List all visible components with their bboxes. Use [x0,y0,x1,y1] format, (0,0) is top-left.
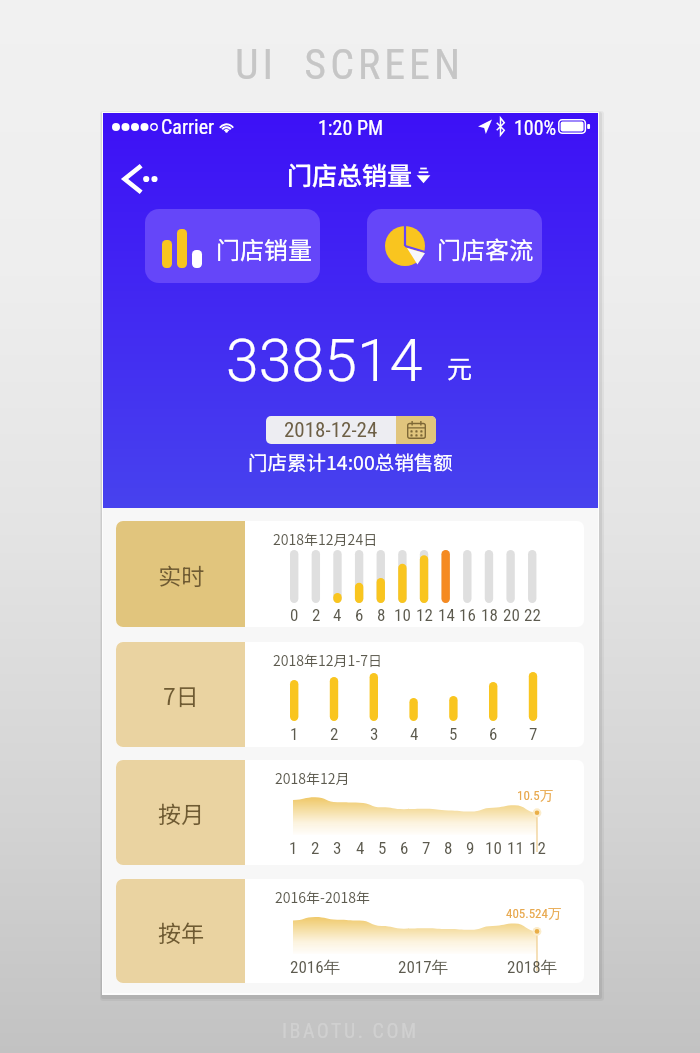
staticText: 100% [514,116,557,139]
staticText: 2018年12月1-7日 [273,650,383,670]
staticText: 8 [444,838,453,858]
staticText: 2016年-2018年 [275,887,371,907]
staticText: 1 [290,724,299,744]
button[interactable]: 按月 [116,760,584,865]
staticText: 2018年12月24日 [273,529,378,549]
button[interactable]: 7日 [116,642,584,747]
button[interactable]: 门店总销量 [287,156,431,192]
staticText: 4 [410,724,419,744]
button[interactable]: 门店客流 [367,209,542,283]
staticText: 20 [503,605,520,625]
staticText: 3 [333,838,342,858]
staticText: 18 [481,605,498,625]
staticText: 元 [447,349,473,385]
staticText: 7 [422,838,431,858]
staticText: 0 [290,605,299,625]
staticText: 10 [394,605,411,625]
staticText: 10.5万 [517,787,553,803]
staticText: 1 [289,838,298,858]
staticText: 实时 [158,558,204,591]
staticText: 7日 [163,678,199,711]
staticText: 2 [312,605,321,625]
staticText: 14 [438,605,455,625]
staticText: 22 [524,605,541,625]
staticText: 9 [466,838,475,858]
button[interactable]: Back [115,155,163,203]
button[interactable]: 2018-12-24 [266,416,436,444]
staticText: 12 [529,838,546,858]
staticText: 6 [355,605,364,625]
staticText: 10 [485,838,502,858]
staticText: 门店客流 [437,231,533,266]
button[interactable]: 实时 [116,521,584,627]
staticText: 6 [400,838,409,858]
staticText: 12 [416,605,433,625]
staticText: 405.524万 [506,905,561,921]
staticText: 2 [330,724,339,744]
staticText: 6 [489,724,498,744]
staticText: 5 [378,838,387,858]
staticText: 2016年 [290,957,341,978]
staticText: 2018年12月 [275,768,350,788]
staticText: 16 [459,605,476,625]
staticText: 4 [356,838,365,858]
staticText: 2017年 [398,957,449,978]
staticText: 2018-12-24 [284,418,378,443]
staticText: 门店销量 [216,231,312,266]
button[interactable]: 按年 [116,879,584,983]
button[interactable]: 门店销量 [145,209,320,283]
staticText: IBAOTU. COM [282,1019,419,1042]
staticText: 7 [529,724,538,744]
staticText: 3 [370,724,379,744]
staticText: 11 [507,838,524,858]
staticText: 2018年 [507,957,558,978]
staticText: 门店总销量 [287,156,413,192]
staticText: 5 [449,724,458,744]
staticText: 338514 [226,326,423,395]
staticText: 按年 [158,915,204,948]
staticText: Carrier [161,115,215,138]
staticText: 门店累计14:00总销售额 [248,447,453,475]
staticText: 按月 [158,796,204,829]
staticText: 1:20 PM [318,116,384,139]
staticText: 2 [311,838,320,858]
staticText: UI SCREEN [235,40,465,89]
staticText: 8 [377,605,386,625]
staticText: 4 [333,605,342,625]
